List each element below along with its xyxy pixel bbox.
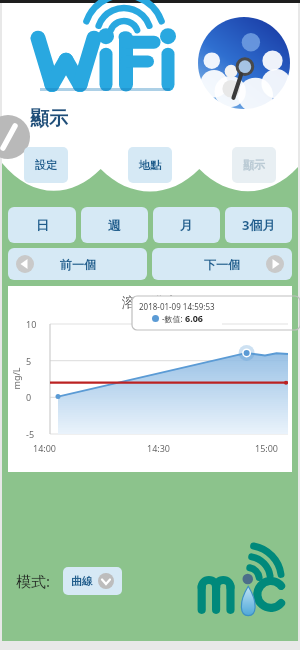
staticText: 日 [36, 217, 49, 233]
staticText: 3個月 [242, 216, 276, 234]
button[interactable]: 下一個 [152, 248, 292, 280]
button[interactable]: 3個月 [225, 207, 292, 243]
staticText: 下一個 [204, 257, 240, 272]
button[interactable]: 顯示 [232, 147, 276, 183]
staticText: 前一個 [60, 257, 96, 272]
staticText: 顯示 [30, 107, 68, 131]
staticText: -5 [26, 428, 35, 440]
staticText: 溶氧濃度 [122, 294, 178, 312]
button[interactable]: 月 [153, 207, 220, 243]
staticText: mg/L [9, 366, 21, 389]
staticText: 2018-01-09 14:59:53 [139, 301, 215, 312]
button[interactable]: 地點 [128, 147, 172, 183]
button[interactable]: 設定 [24, 147, 68, 183]
staticText: 曲線 [71, 574, 93, 588]
button[interactable]: 週 [81, 207, 148, 243]
staticText: 設定 [35, 158, 57, 172]
staticText: 月 [180, 217, 193, 233]
staticText: -數值: [162, 313, 185, 324]
staticText: 週 [108, 217, 121, 233]
staticText: 顯示 [243, 158, 265, 172]
staticText: 14:30 [147, 442, 171, 454]
staticText: 5 [26, 355, 32, 367]
staticText: 地點 [139, 158, 161, 172]
staticText: 模式: [16, 571, 51, 591]
staticText: 0 [26, 391, 32, 403]
button[interactable]: 日 [8, 207, 76, 243]
staticText: 10 [26, 318, 37, 330]
staticText: 6.06 [185, 312, 203, 324]
staticText: 15:00 [255, 442, 279, 454]
button[interactable]: 前一個 [8, 248, 147, 280]
staticText: 14:00 [33, 442, 57, 454]
button[interactable]: 曲線 [63, 567, 122, 595]
